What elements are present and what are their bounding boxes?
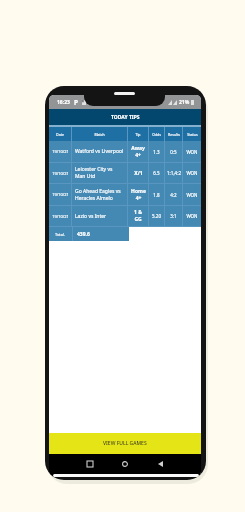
- staticText: Results: [168, 132, 180, 137]
- button[interactable]: Home: [118, 457, 132, 471]
- staticText: 1.3: [153, 149, 160, 155]
- button[interactable]: 19/10/21: [49, 141, 201, 162]
- button[interactable]: VIEW FULL GAMES: [49, 433, 201, 454]
- staticText: 5.20: [152, 213, 161, 219]
- staticText: 1:1,4:2: [167, 170, 181, 176]
- staticText: 19/10/21: [52, 214, 69, 219]
- staticText: Date: [56, 132, 64, 137]
- button[interactable]: 19/10/21: [49, 184, 201, 205]
- staticText: Home 4+: [131, 188, 146, 202]
- staticText: Watford vs Liverpool: [75, 148, 124, 155]
- staticText: 3:1: [170, 213, 177, 219]
- staticText: Leicester City vs Man Utd: [75, 166, 124, 180]
- button[interactable]: Back: [153, 457, 167, 471]
- staticText: Odds: [152, 132, 161, 137]
- staticText: 0:5: [170, 149, 177, 155]
- button[interactable]: 19/10/21: [49, 206, 201, 226]
- staticText: 1 & GG: [134, 209, 142, 223]
- staticText: WON: [186, 213, 198, 219]
- staticText: Go Ahead Eagles vs Heracles Almelo: [75, 188, 124, 202]
- staticText: 16:23: [57, 99, 70, 106]
- staticText: Tip: [135, 132, 141, 137]
- button[interactable]: 19/10/21: [49, 163, 201, 183]
- staticText: Status: [187, 132, 198, 137]
- staticText: 19/10/21: [52, 171, 69, 176]
- staticText: Total.: [55, 232, 66, 237]
- staticText: WON: [186, 149, 198, 155]
- staticText: 19/10/21: [52, 192, 69, 197]
- staticText: 6.5: [153, 170, 160, 176]
- staticText: Away 4+: [131, 145, 145, 159]
- button[interactable]: Recents: [83, 457, 97, 471]
- staticText: 21%: [179, 99, 190, 106]
- staticText: 19/10/21: [52, 149, 69, 154]
- staticText: P: [74, 98, 79, 107]
- staticText: WON: [186, 192, 198, 198]
- staticText: WON: [186, 170, 198, 176]
- staticText: 439.6: [77, 231, 90, 238]
- staticText: 1.8: [153, 192, 160, 198]
- staticText: Lazio vs Inter: [75, 213, 107, 220]
- staticText: 4:2: [170, 192, 177, 198]
- staticText: TODAY TIPS: [111, 114, 140, 121]
- staticText: X/1: [134, 170, 143, 177]
- staticText: VIEW FULL GAMES: [103, 440, 147, 447]
- staticText: Match: [94, 132, 105, 137]
